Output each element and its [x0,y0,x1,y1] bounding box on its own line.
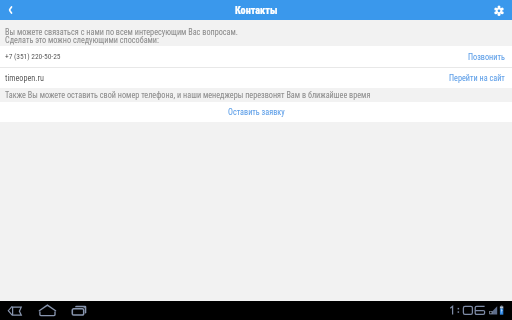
button[interactable]: Back [5,301,26,320]
button[interactable]: Home [37,301,58,320]
button[interactable]: Back [0,0,20,20]
staticText: Позвонить [468,52,505,62]
button[interactable]: Оставить заявку [0,102,512,122]
staticText: Перейти на сайт [449,73,505,83]
staticText: timeopen.ru [5,73,44,83]
staticText: Контакты [235,5,278,17]
staticText: +7 (351) 220-50-25 [5,52,61,61]
staticText: Вы можете связаться с нами по всем интер… [5,27,238,45]
button[interactable]: Recent apps [68,301,89,320]
button[interactable]: +7 (351) 220-50-25 [0,46,512,67]
staticText: Также Вы можете оставить свой номер теле… [5,90,371,100]
button[interactable]: Settings [486,0,512,20]
button[interactable]: timeopen.ru [0,68,512,88]
staticText: Оставить заявку [228,107,285,117]
